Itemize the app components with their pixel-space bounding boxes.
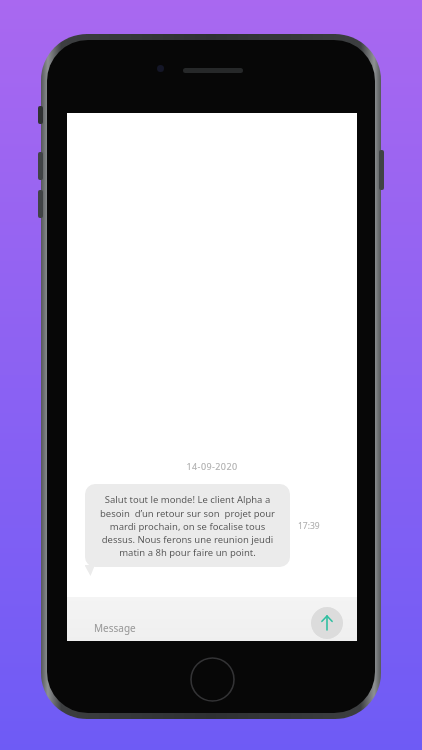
staticText: 14-09-2020 — [67, 460, 357, 472]
staticText: 17:39 — [298, 520, 320, 532]
button[interactable] — [67, 597, 357, 641]
staticText: Message — [94, 621, 136, 635]
staticText: Salut tout le monde! Le client Alpha a b… — [95, 493, 280, 558]
button[interactable]: Send — [311, 607, 343, 639]
button[interactable]: Salut tout le monde! Le client Alpha a b… — [85, 484, 290, 567]
